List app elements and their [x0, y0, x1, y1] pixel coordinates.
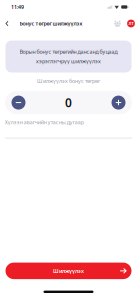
- button[interactable]: Contacts: [112, 14, 123, 32]
- staticText: хэрэглэгчрүү шилжүүлэх: [36, 58, 101, 65]
- staticText: Шилжүүлэх бонус төгрөг: [37, 77, 100, 85]
- button[interactable]: Back: [1, 14, 12, 32]
- staticText: 0: [65, 95, 72, 110]
- staticText: Бонус төгрөг шилжүүлэх: [19, 20, 82, 27]
- button[interactable]: Decrease: [9, 93, 28, 112]
- button[interactable]: Profile: [125, 14, 136, 32]
- staticText: 11:49: [11, 3, 24, 11]
- staticText: ЛТ: [128, 21, 133, 26]
- button[interactable]: Increase: [109, 93, 128, 112]
- staticText: Шилжүүлэх: [53, 267, 84, 274]
- button[interactable]: Шилжүүлэх: [5, 263, 131, 279]
- staticText: Ворын бонус төгрөгийн дансанд буцаад: [19, 48, 117, 55]
- staticText: Хүлээн авагчийн утасны дугаар: [5, 119, 84, 126]
